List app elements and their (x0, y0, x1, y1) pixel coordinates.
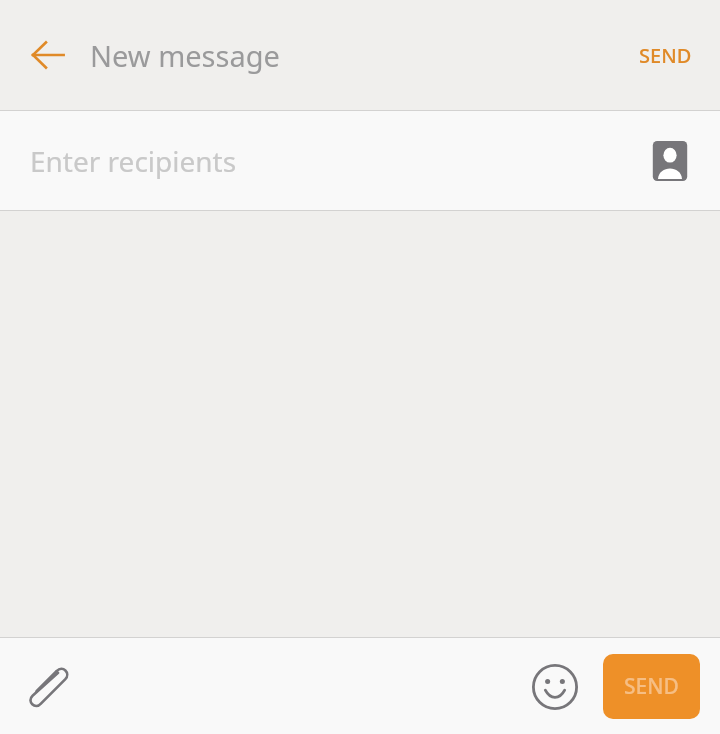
staticText: SEND (624, 672, 679, 701)
staticText: Enter recipients (30, 142, 237, 180)
button[interactable]: Attach (14, 656, 74, 716)
staticText: New message (90, 36, 280, 75)
button[interactable]: Back (20, 27, 76, 83)
button[interactable]: SEND (603, 654, 700, 719)
button[interactable]: Enter recipients (0, 111, 600, 210)
button[interactable]: Emoji (525, 657, 585, 717)
staticText: SEND (639, 42, 692, 69)
button[interactable]: SEND (627, 32, 704, 79)
button[interactable]: Pick contact (640, 131, 700, 191)
